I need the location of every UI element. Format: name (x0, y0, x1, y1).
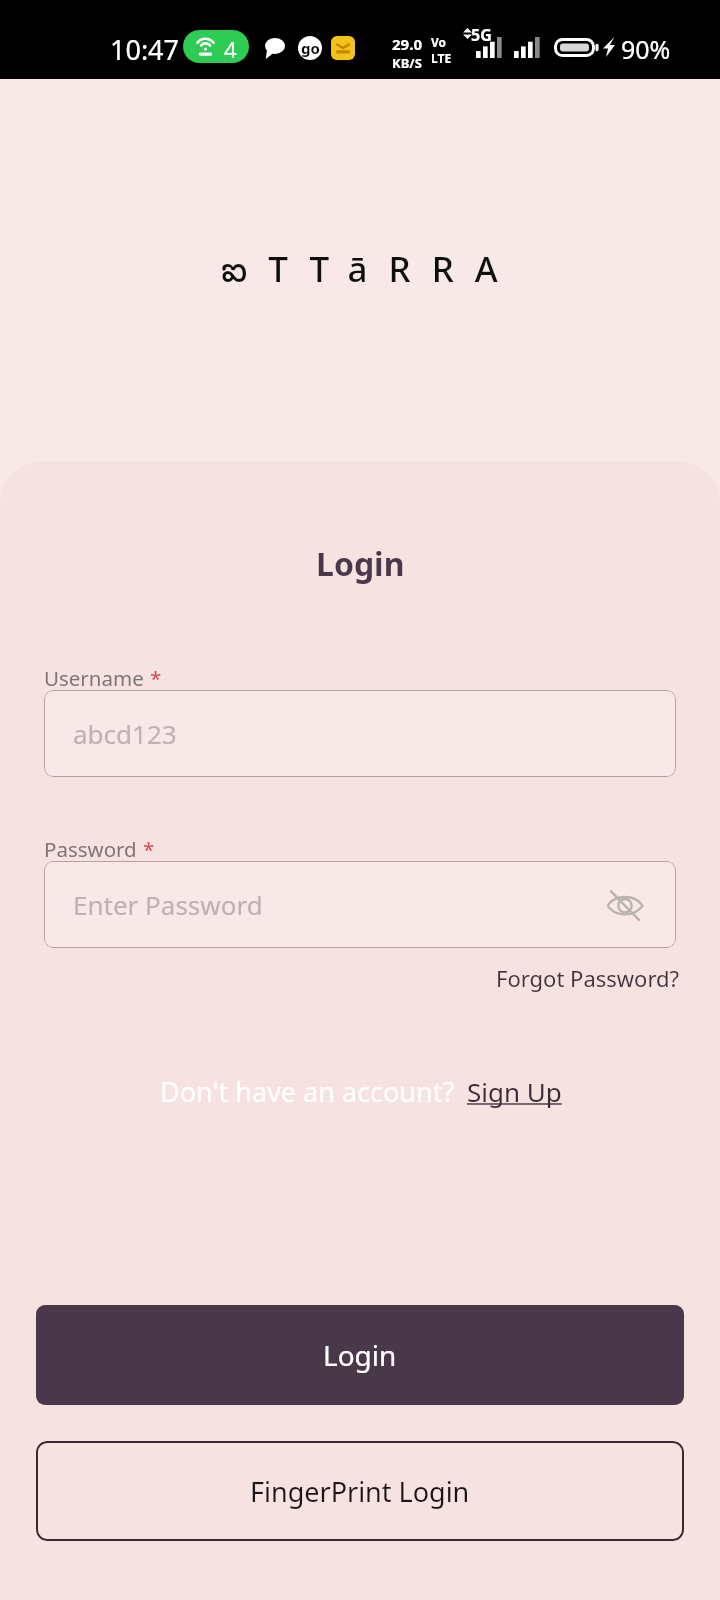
button[interactable]: Forgot Password? (492, 959, 684, 997)
staticText: 29.0 (392, 34, 422, 54)
staticText: Username (44, 664, 150, 692)
staticText: abcd123 (73, 716, 177, 751)
staticText: LTE (431, 50, 452, 66)
button[interactable]: FingerPrint Login (36, 1441, 684, 1541)
staticText: 5G (471, 24, 492, 46)
staticText: 4 (224, 34, 237, 63)
staticText: FingerPrint Login (250, 1473, 470, 1510)
button[interactable]: abcd123 (44, 690, 676, 777)
button[interactable]: Login (36, 1305, 684, 1405)
staticText: Login (316, 542, 405, 586)
staticText: KB/S (392, 54, 422, 72)
staticText: * (143, 835, 155, 863)
button[interactable]: Sign Up (467, 1074, 562, 1109)
staticText: Enter Password (73, 887, 263, 922)
staticText: go (301, 38, 320, 58)
staticText: Don't have an account? (160, 1073, 455, 1110)
button[interactable]: Enter Password (44, 861, 676, 948)
staticText: Login (323, 1336, 397, 1374)
staticText: Vo (431, 34, 447, 50)
staticText: ఐTTāRRA (221, 245, 519, 297)
staticText: 10:47 (110, 31, 180, 68)
staticText: * (150, 664, 162, 692)
staticText: 90% (621, 32, 671, 66)
staticText: Password (44, 835, 143, 863)
button[interactable]: Show password (602, 882, 648, 928)
